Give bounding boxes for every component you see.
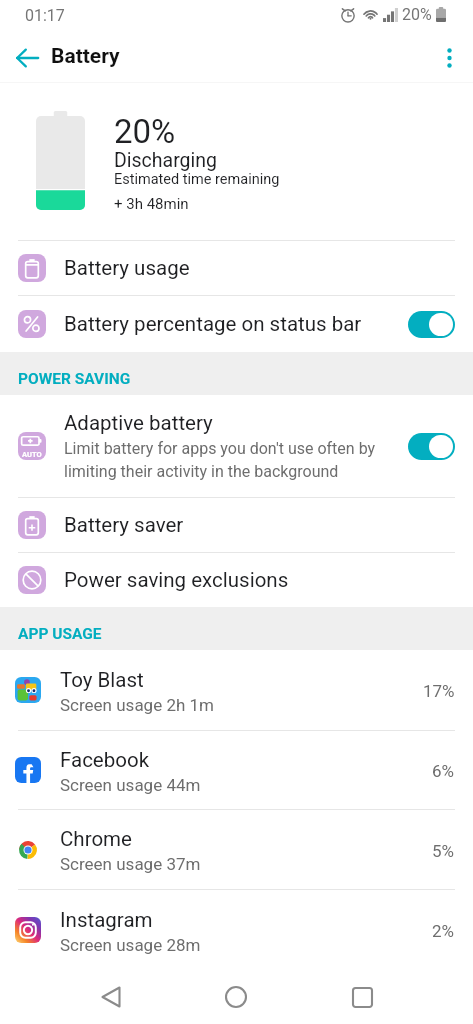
button[interactable]: Toy Blast xyxy=(0,650,473,730)
staticText: Limit battery for apps you don't use oft… xyxy=(64,439,400,481)
staticText: Estimated time remaining xyxy=(114,171,280,188)
button[interactable]: Back xyxy=(87,973,135,1021)
button[interactable]: Battery usage xyxy=(0,241,473,295)
staticText: Screen usage 28m xyxy=(60,935,201,955)
staticText: POWER SAVING xyxy=(18,370,131,388)
staticText: Instagram xyxy=(60,908,153,932)
staticText: 17% xyxy=(423,681,455,701)
staticText: Battery percentage on status bar xyxy=(64,312,362,336)
button[interactable]: Chrome xyxy=(0,810,473,889)
button[interactable]: Facebook xyxy=(0,731,473,809)
staticText: 2% xyxy=(432,921,455,941)
button[interactable]: Instagram xyxy=(0,890,473,970)
staticText: Screen usage 2h 1m xyxy=(60,695,214,715)
staticText: Battery saver xyxy=(64,513,184,537)
staticText: Chrome xyxy=(60,827,132,851)
staticText: Toy Blast xyxy=(60,668,144,692)
button[interactable]: Home xyxy=(212,973,260,1021)
staticText: 5% xyxy=(432,841,455,861)
staticText: Screen usage 44m xyxy=(60,775,201,795)
button[interactable]: Navigate up xyxy=(5,36,49,80)
staticText: APP USAGE xyxy=(18,625,102,643)
staticText: Discharging xyxy=(114,149,217,172)
button[interactable]: Recent apps xyxy=(338,973,386,1021)
staticText: 01:17 xyxy=(25,6,65,25)
staticText: 20% xyxy=(402,5,432,24)
staticText: + 3h 48min xyxy=(114,195,189,213)
button[interactable]: More options xyxy=(427,36,471,80)
staticText: Power saving exclusions xyxy=(64,568,289,592)
button[interactable]: Toggle xyxy=(408,311,455,338)
button[interactable]: AUTO xyxy=(0,395,473,497)
staticText: Battery xyxy=(51,44,120,69)
staticText: AUTO xyxy=(22,450,42,459)
staticText: Facebook xyxy=(60,748,150,772)
button[interactable]: Battery saver xyxy=(0,498,473,552)
button[interactable]: Battery percentage on status bar xyxy=(0,296,473,352)
staticText: 20% xyxy=(114,112,176,151)
staticText: 6% xyxy=(432,761,455,781)
staticText: Adaptive battery xyxy=(64,411,213,435)
staticText: Battery usage xyxy=(64,256,190,280)
staticText: Screen usage 37m xyxy=(60,854,201,874)
button[interactable]: Power saving exclusions xyxy=(0,553,473,607)
button[interactable]: Toggle xyxy=(408,433,455,460)
